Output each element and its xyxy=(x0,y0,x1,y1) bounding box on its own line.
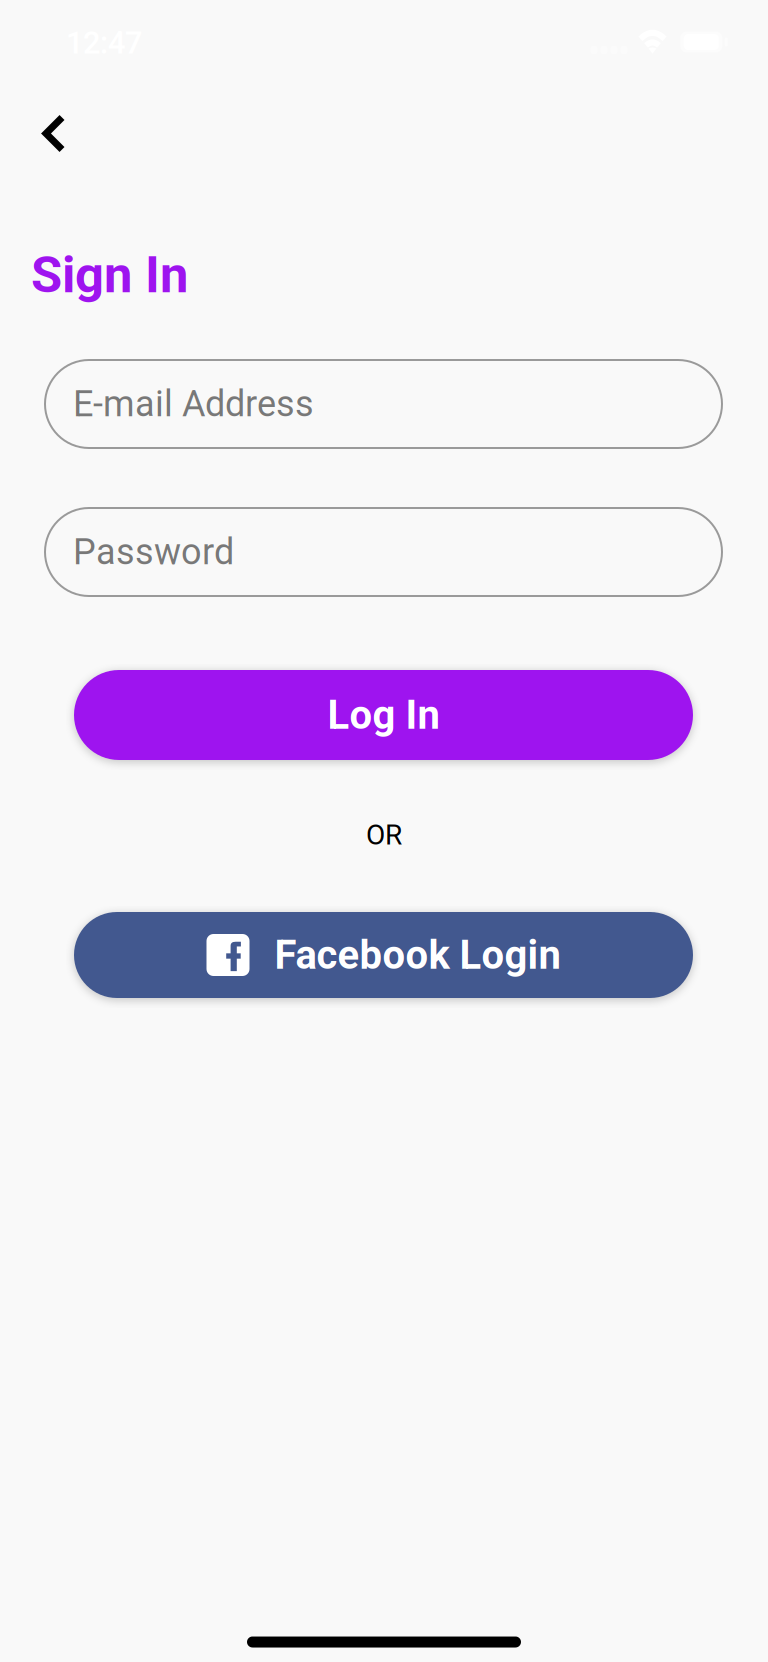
staticText: OR xyxy=(366,819,402,851)
staticText: Password xyxy=(73,531,234,573)
button[interactable]: Password xyxy=(45,508,722,596)
staticText: E-mail Address xyxy=(73,383,314,425)
staticText: Facebook Login xyxy=(274,932,560,978)
button[interactable]: Back xyxy=(14,93,94,173)
button[interactable]: E-mail Address xyxy=(45,360,722,448)
button[interactable]: Log In xyxy=(74,670,693,760)
staticText: Log In xyxy=(327,692,439,738)
staticText: Sign In xyxy=(31,245,188,305)
button[interactable]: Facebook Login xyxy=(74,912,693,998)
